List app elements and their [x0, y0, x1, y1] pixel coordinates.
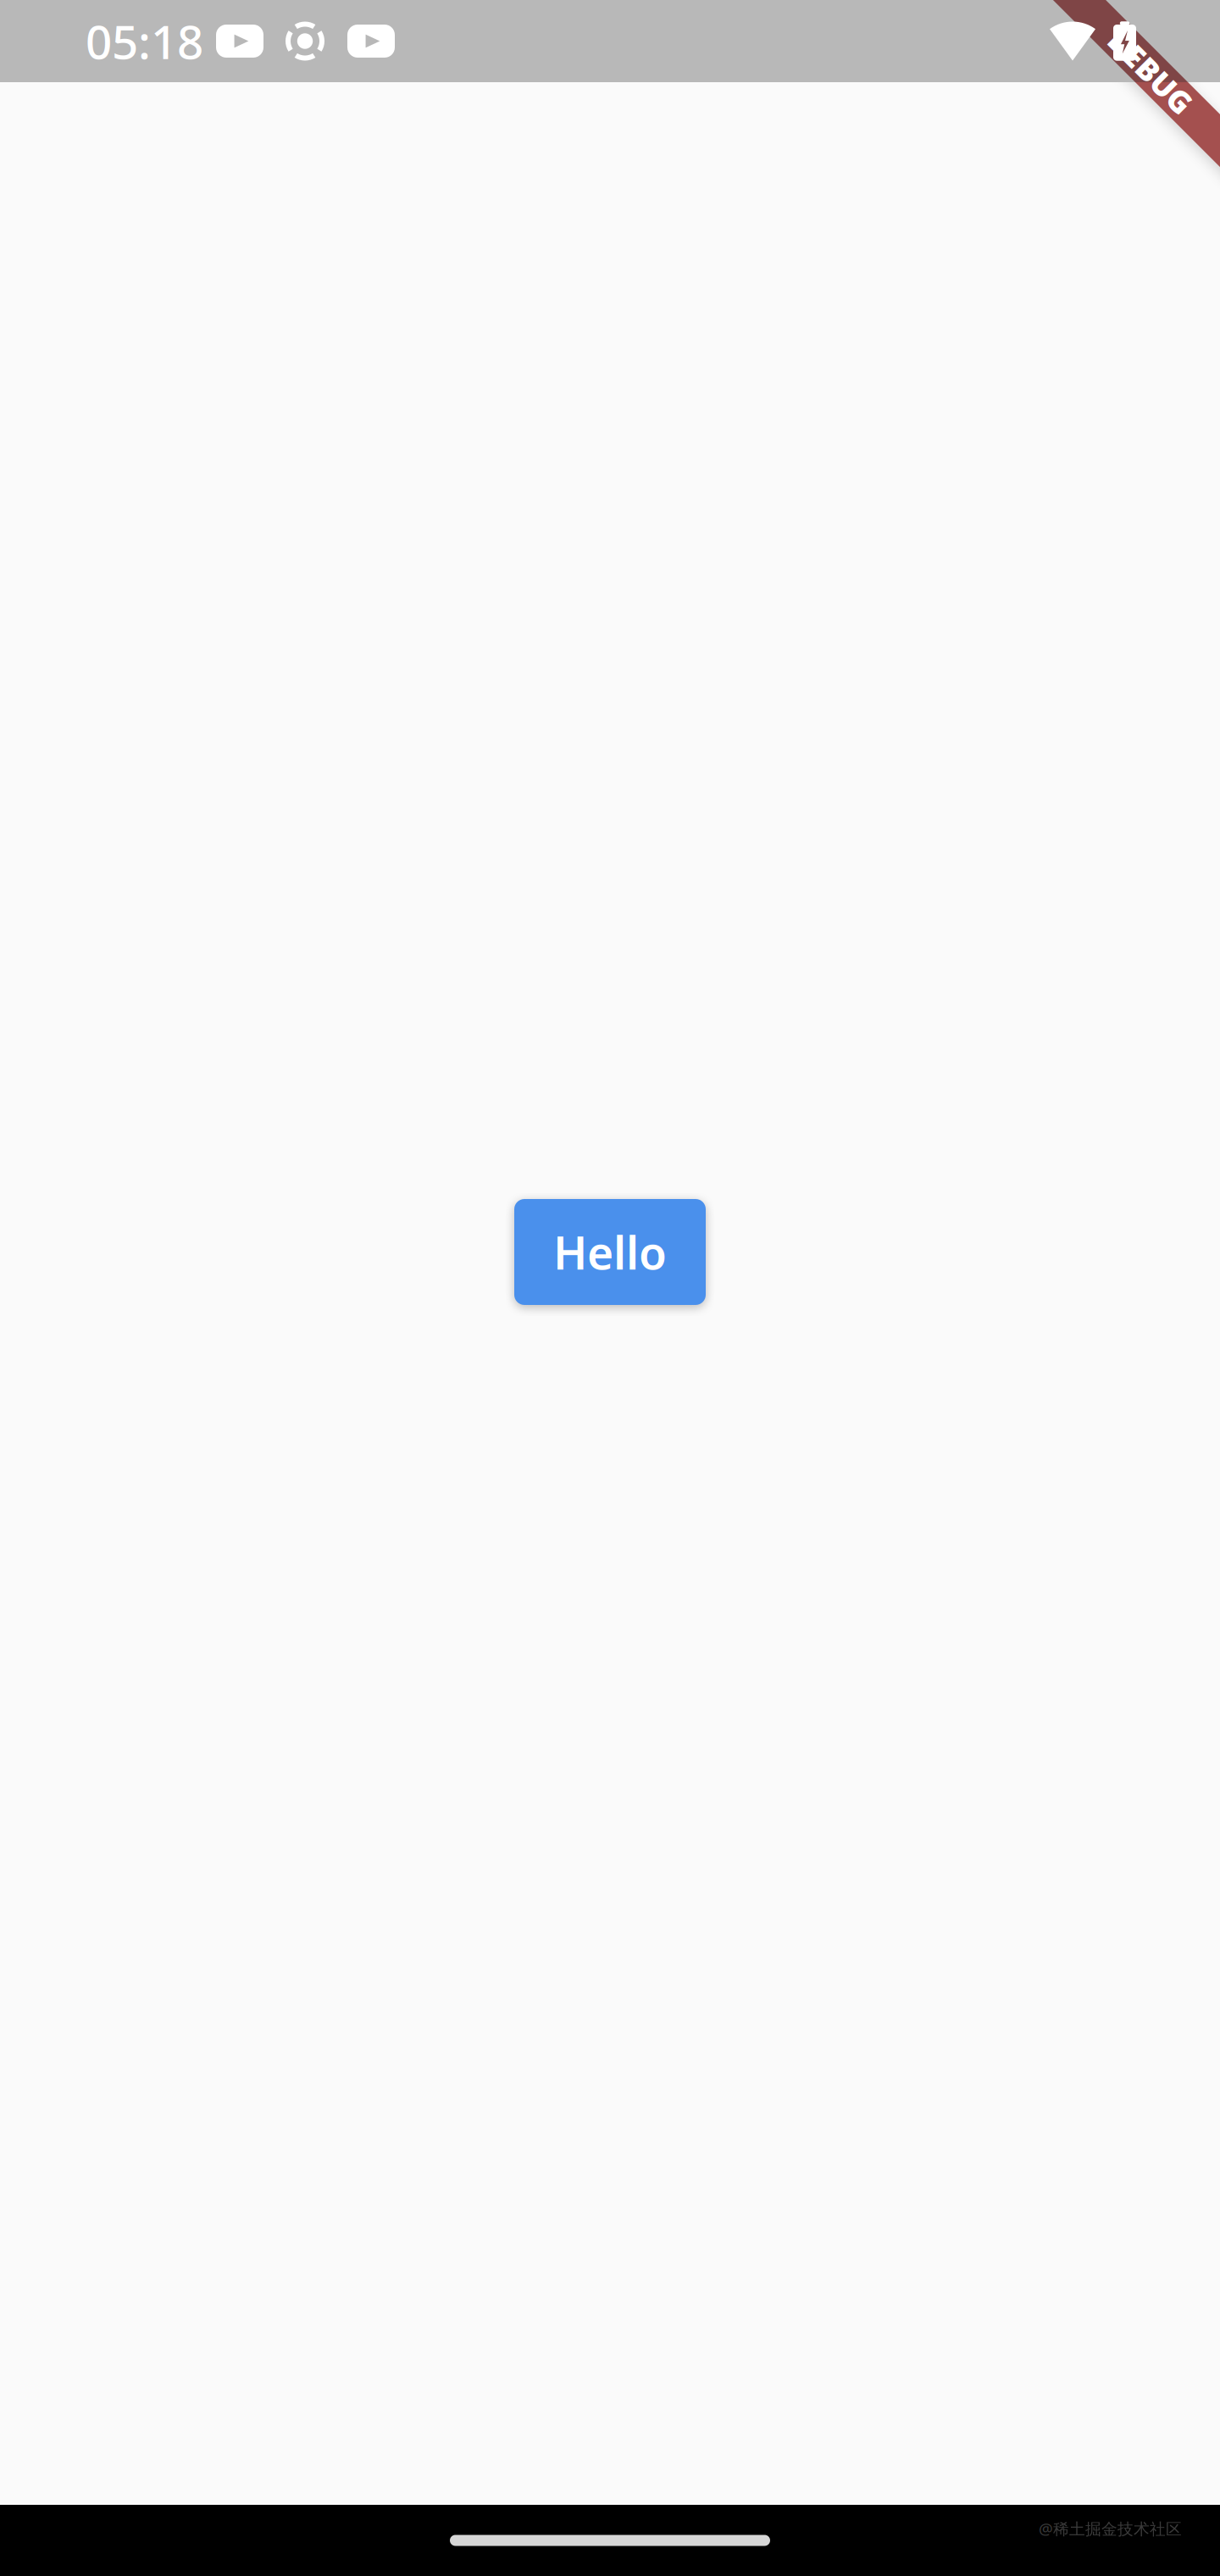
button[interactable]: Hello: [514, 1199, 706, 1305]
staticText: DEBUG: [1099, 50, 1204, 91]
staticText: Hello: [553, 1222, 667, 1282]
staticText: 05:18: [86, 10, 203, 72]
staticText: @稀土掘金技术社区: [1039, 2518, 1182, 2539]
staticText: DEBUG: [1099, 50, 1204, 91]
